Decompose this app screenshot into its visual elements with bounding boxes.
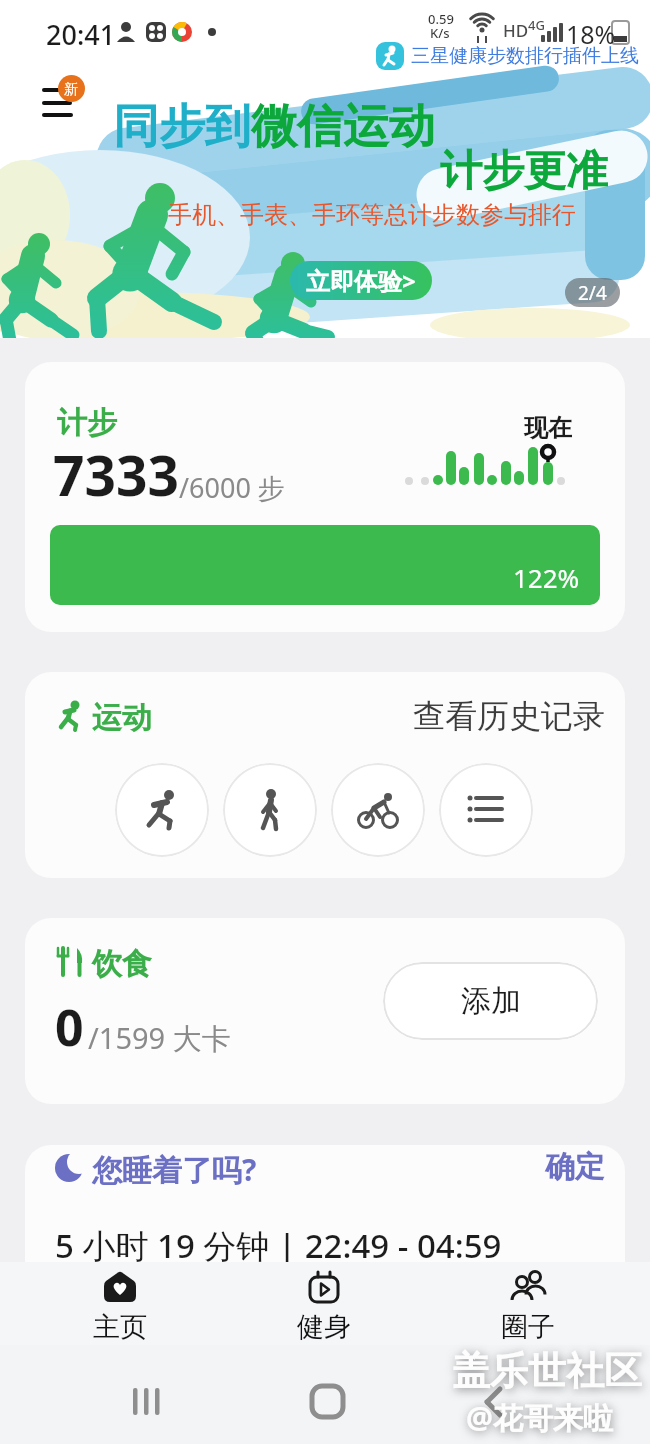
button[interactable]: 饮食 xyxy=(25,918,625,1104)
button[interactable]: 运动 xyxy=(25,672,625,878)
staticText: 盖乐世社区 xyxy=(452,1347,642,1395)
button[interactable] xyxy=(455,1367,535,1437)
staticText: 7333 xyxy=(53,437,179,512)
button[interactable]: 三星健康步数排行插件上线 xyxy=(376,42,639,70)
button[interactable]: 新 xyxy=(30,72,90,128)
staticText: 122% xyxy=(513,560,580,595)
button[interactable]: 您睡着了吗? xyxy=(25,1145,625,1262)
staticText: 4G xyxy=(528,16,545,34)
staticText: 18% xyxy=(566,17,616,51)
staticText: 手机、手表、手环等总计步数参与排行 xyxy=(168,200,576,230)
staticText: 2/4 xyxy=(578,280,607,306)
staticText: 查看历史记录 xyxy=(413,696,605,736)
staticText: 同步到 xyxy=(113,98,251,156)
staticText: 新 xyxy=(64,81,78,99)
button[interactable]: 健身 xyxy=(234,1262,414,1345)
staticText: 20:41 xyxy=(46,16,116,53)
staticText: /6000 步 xyxy=(179,469,285,506)
staticText: 计步更准 xyxy=(440,145,608,198)
button[interactable]: 查看历史记录 xyxy=(395,694,605,738)
button[interactable] xyxy=(331,763,425,857)
staticText: 确定 xyxy=(545,1148,605,1186)
staticText: 三星健康步数排行插件上线 xyxy=(411,44,639,68)
staticText: K/s xyxy=(430,24,450,42)
staticText: 现在 xyxy=(524,413,572,443)
staticText: 运动 xyxy=(92,699,152,737)
button[interactable]: 圈子 xyxy=(438,1262,618,1345)
staticText: 0 xyxy=(55,993,84,1061)
staticText: /1599 大卡 xyxy=(88,1018,231,1058)
button[interactable]: 立即体验> xyxy=(290,261,432,300)
button[interactable] xyxy=(439,763,533,857)
staticText: 微信运动 xyxy=(251,98,435,156)
button[interactable]: 主页 xyxy=(30,1262,210,1345)
staticText: 圈子 xyxy=(501,1310,555,1344)
staticText: 健身 xyxy=(297,1310,351,1344)
staticText: 5 小时 19 分钟 | 22:49 - 04:59 xyxy=(55,1223,502,1262)
button[interactable]: 计步 xyxy=(25,362,625,632)
button[interactable]: 添加 xyxy=(383,962,598,1040)
staticText: 您睡着了吗? xyxy=(92,1149,257,1190)
button[interactable]: 确定 xyxy=(465,1145,605,1189)
staticText: 立即体验> xyxy=(306,264,416,297)
staticText: HD xyxy=(503,19,529,42)
staticText: 计步 xyxy=(57,404,117,442)
staticText: 饮食 xyxy=(92,945,152,983)
button[interactable] xyxy=(288,1367,368,1437)
button[interactable] xyxy=(223,763,317,857)
staticText: @花哥来啦 xyxy=(466,1397,613,1438)
staticText: 0.59 xyxy=(428,10,454,28)
button[interactable] xyxy=(115,763,209,857)
staticText: 主页 xyxy=(93,1310,147,1344)
staticText: 添加 xyxy=(461,982,521,1020)
button[interactable] xyxy=(108,1367,188,1437)
